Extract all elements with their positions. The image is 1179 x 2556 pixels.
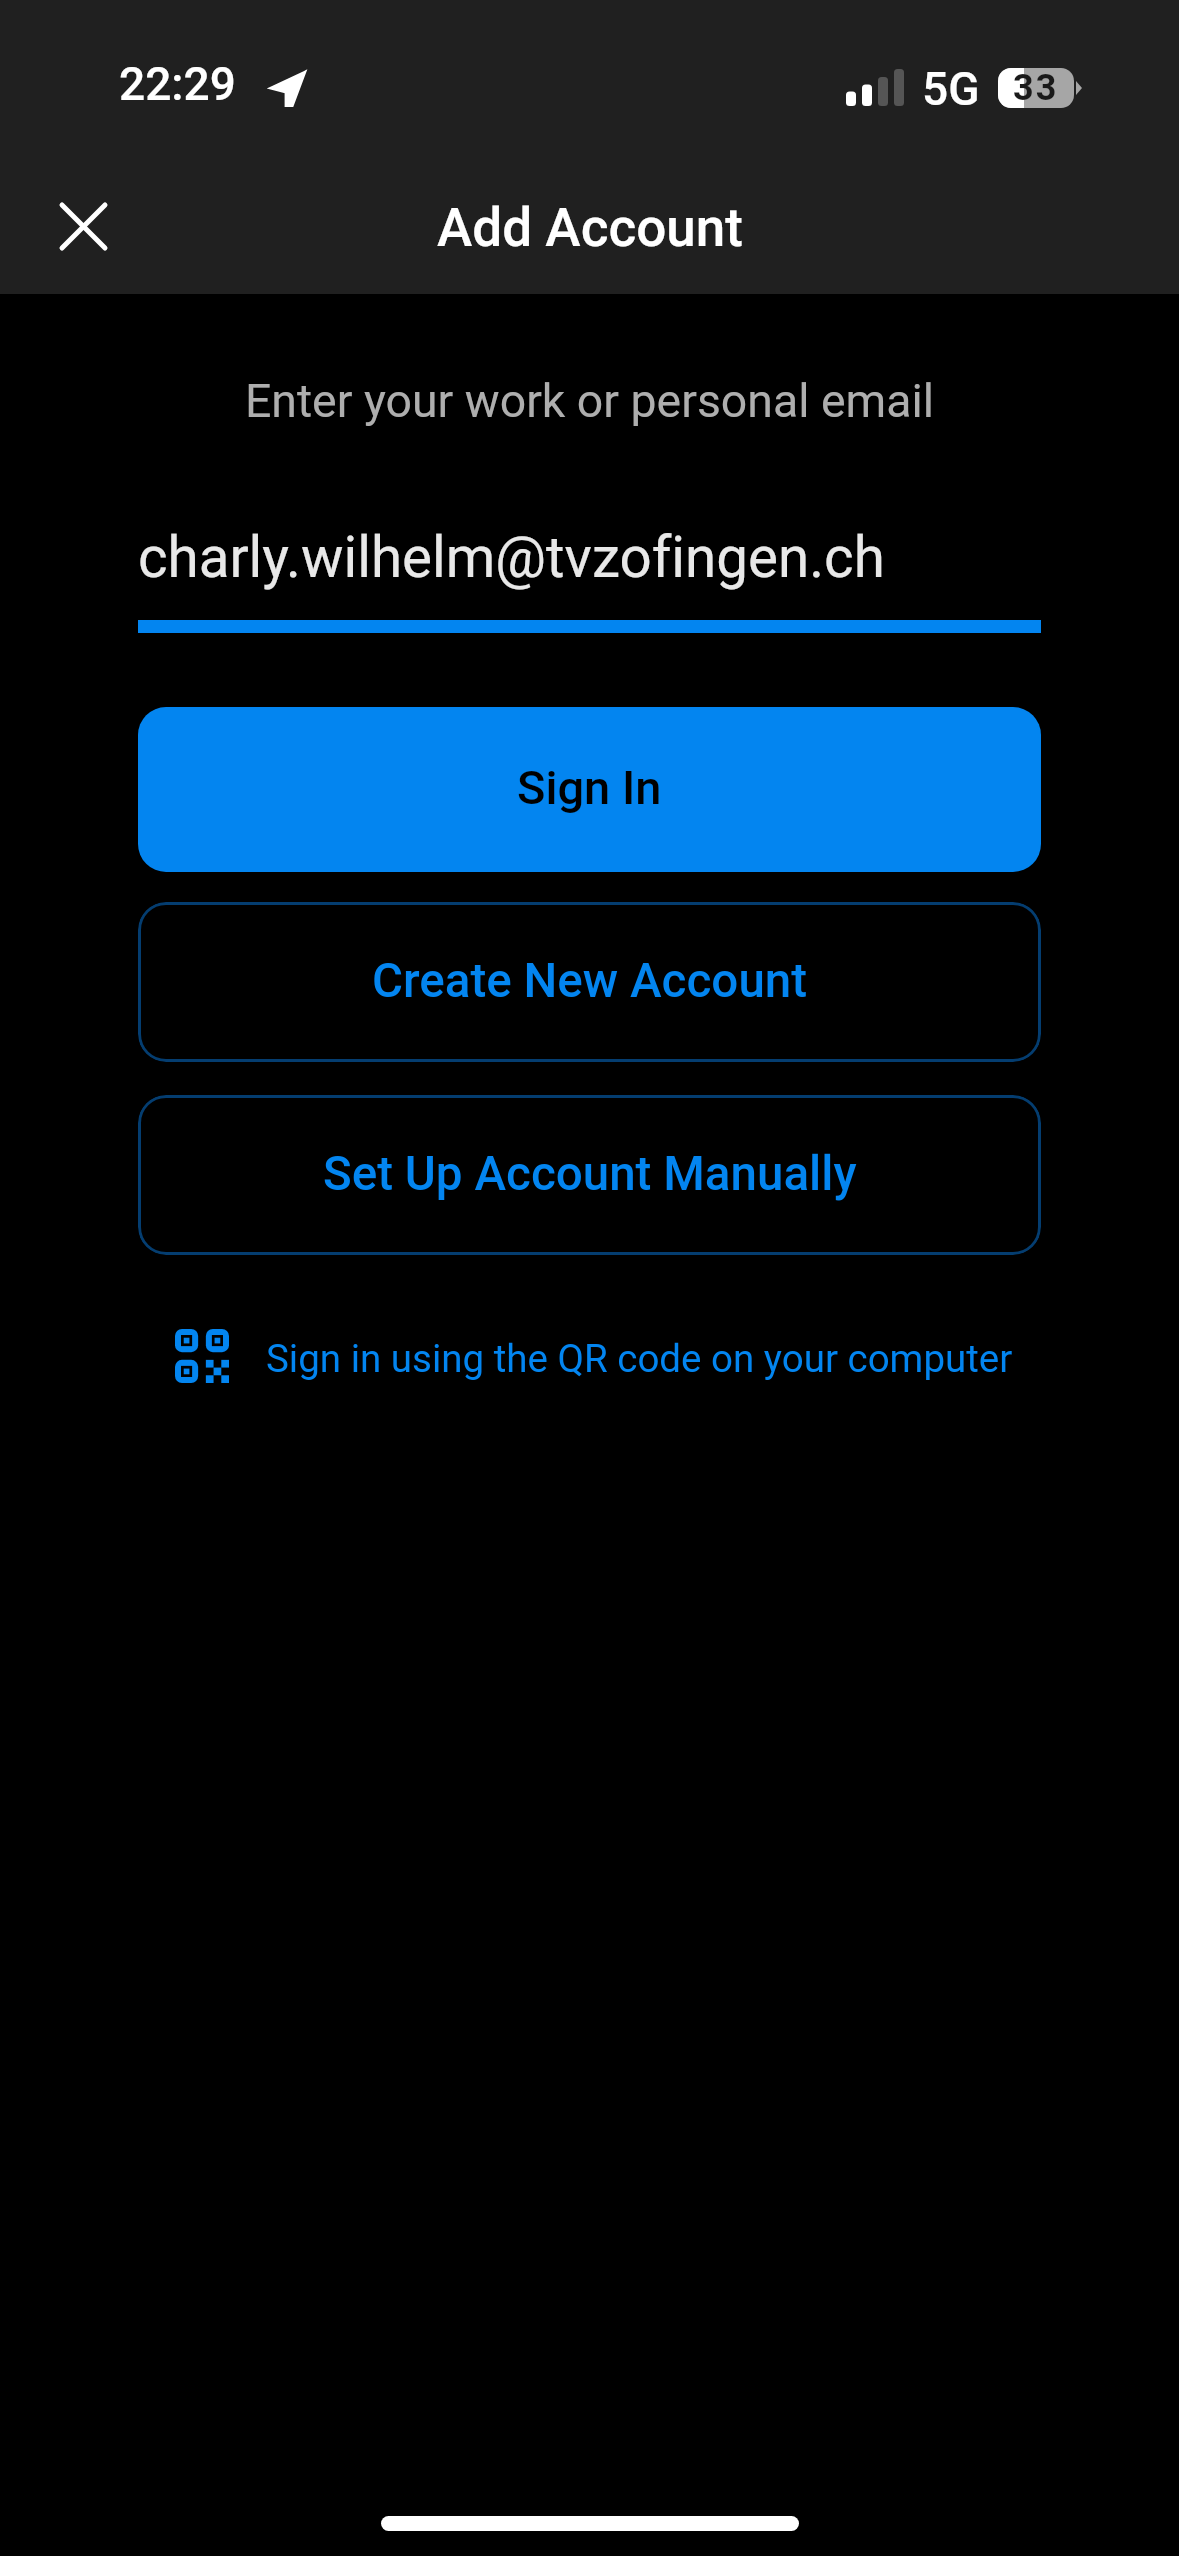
button[interactable]: Close [36,179,131,274]
button[interactable]: Set Up Account Manually [138,1095,1041,1255]
button[interactable]: Sign In [138,707,1041,872]
staticText: 5G [922,62,980,116]
staticText: charly.wilhelm@tvzofingen.ch [138,525,885,591]
staticText: Add Account [437,197,743,259]
button[interactable]: Sign in using the QR code on your comput… [138,1331,1041,1385]
staticText: Sign in using the QR code on your comput… [266,1336,1013,1381]
button[interactable]: Create New Account [138,902,1041,1062]
staticText: Enter your work or personal email [0,374,1179,428]
staticText: Sign In [517,760,662,815]
staticText: 22:29 [119,57,236,111]
staticText: 33 [1013,67,1059,107]
staticText: Set Up Account Manually [323,1146,857,1202]
staticText: Create New Account [372,953,808,1009]
